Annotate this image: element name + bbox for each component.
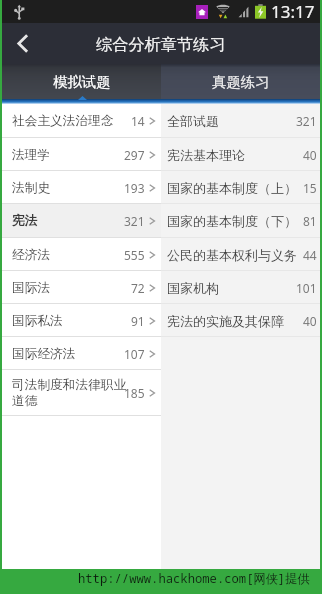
staticText: 宪法的实施及其保障 [167, 313, 303, 329]
staticText: 经济法 [12, 247, 128, 263]
staticText: 91 [131, 313, 145, 329]
staticText: 40 [303, 313, 317, 329]
staticText: 宪法 [12, 213, 128, 229]
button[interactable]: 法理学 [2, 138, 161, 171]
staticText: http://www.hackhome.com[网侠]提供 [78, 570, 310, 587]
button[interactable]: 国际私法 [2, 304, 161, 337]
staticText: 法理学 [12, 147, 128, 163]
button[interactable]: 宪法基本理论 [161, 138, 320, 171]
staticText: 社会主义法治理念 [12, 113, 128, 129]
staticText: 297 [124, 147, 145, 163]
staticText: 101 [296, 280, 317, 296]
button[interactable]: 公民的基本权利与义务 [161, 238, 320, 271]
button[interactable]: 社会主义法治理念 [2, 104, 161, 138]
staticText: 321 [124, 213, 145, 229]
button[interactable]: 真题练习 [161, 64, 320, 99]
staticText: 15 [303, 180, 317, 196]
staticText: 81 [303, 213, 317, 229]
staticText: 模拟试题 [53, 73, 111, 91]
button[interactable]: 宪法的实施及其保障 [161, 304, 320, 337]
staticText: 193 [124, 180, 145, 196]
staticText: 国际经济法 [12, 346, 128, 362]
button[interactable]: 法制史 [2, 171, 161, 204]
button[interactable]: 国际法 [2, 271, 161, 304]
staticText: 44 [303, 247, 317, 263]
staticText: 法制史 [12, 180, 128, 196]
button[interactable]: 国家机构 [161, 271, 320, 304]
staticText: 宪法基本理论 [167, 147, 303, 163]
staticText: 72 [131, 280, 145, 296]
staticText: 综合分析章节练习 [96, 34, 226, 54]
staticText: 14 [131, 113, 145, 129]
button[interactable]: 司法制度和法律职业道德 [2, 370, 161, 416]
button[interactable]: Back [2, 23, 42, 64]
button[interactable]: 国家的基本制度（上） [161, 171, 320, 204]
staticText: 13:17 [271, 0, 315, 23]
button[interactable]: 经济法 [2, 238, 161, 271]
staticText: 全部试题 [167, 113, 296, 129]
staticText: 国家的基本制度（上） [167, 180, 303, 196]
staticText: 国际私法 [12, 313, 128, 329]
staticText: 185 [124, 385, 145, 401]
staticText: 国际法 [12, 280, 128, 296]
staticText: 公民的基本权利与义务 [167, 247, 303, 263]
staticText: 107 [124, 346, 145, 362]
staticText: 国家的基本制度（下） [167, 213, 303, 229]
button[interactable]: 全部试题 [161, 104, 320, 138]
button[interactable]: 国家的基本制度（下） [161, 204, 320, 238]
button[interactable]: 国际经济法 [2, 337, 161, 370]
staticText: 司法制度和法律职业道德 [12, 377, 128, 409]
staticText: 40 [303, 147, 317, 163]
staticText: 555 [124, 247, 145, 263]
staticText: 真题练习 [212, 73, 270, 91]
staticText: 321 [296, 113, 317, 129]
button[interactable]: 宪法 [2, 204, 161, 238]
staticText: 国家机构 [167, 280, 296, 296]
button[interactable]: 模拟试题 [2, 64, 161, 99]
